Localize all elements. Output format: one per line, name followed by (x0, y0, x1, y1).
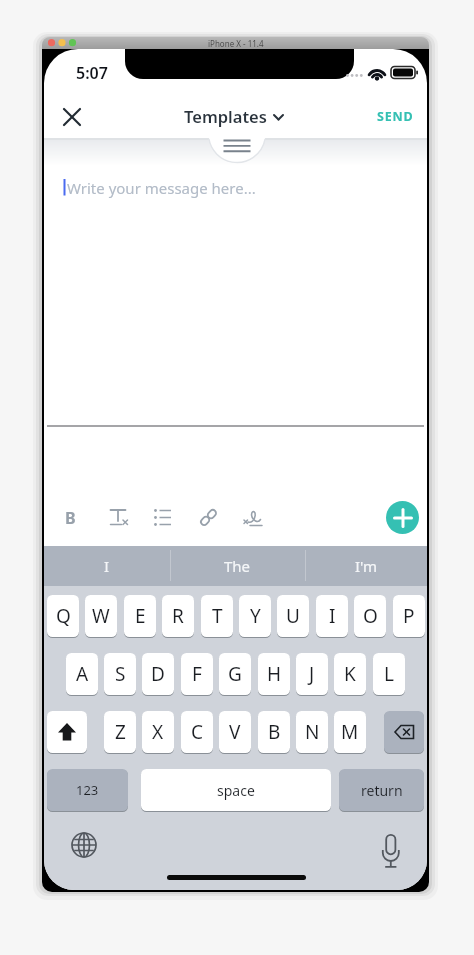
button[interactable] (47, 711, 87, 753)
button[interactable]: A (66, 653, 98, 695)
button[interactable]: SEND (371, 105, 419, 127)
button[interactable] (44, 167, 427, 424)
staticText: P (403, 603, 415, 629)
button[interactable] (241, 505, 266, 530)
staticText: J (309, 661, 315, 687)
button[interactable]: Z (104, 711, 136, 753)
staticText: B (65, 507, 76, 529)
staticText: V (229, 719, 241, 745)
button[interactable]: N (296, 711, 328, 753)
staticText: Templates (184, 105, 267, 127)
button[interactable]: F (181, 653, 213, 695)
staticText: A (76, 661, 89, 687)
staticText: Write your message here... (67, 178, 256, 198)
button[interactable]: B (58, 505, 83, 530)
button[interactable]: space (141, 769, 331, 811)
button[interactable]: I (44, 546, 169, 586)
staticText: U (286, 603, 300, 629)
button[interactable]: Q (47, 595, 79, 637)
button[interactable]: L (373, 653, 405, 695)
staticText: iPhone X - 11.4 (208, 38, 264, 49)
button[interactable] (69, 830, 99, 860)
staticText: C (191, 719, 204, 745)
button[interactable]: 123 (47, 769, 128, 811)
button[interactable]: B (258, 711, 290, 753)
staticText: 5:07 (76, 62, 108, 84)
staticText: M (341, 719, 359, 745)
button[interactable] (56, 101, 88, 133)
button[interactable] (376, 830, 406, 870)
staticText: space (217, 781, 255, 800)
staticText: K (344, 661, 356, 687)
button[interactable]: O (354, 595, 386, 637)
button[interactable]: H (258, 653, 290, 695)
staticText: R (172, 603, 184, 629)
button[interactable]: S (104, 653, 136, 695)
staticText: The (224, 556, 251, 576)
button[interactable] (106, 505, 131, 530)
button[interactable]: E (124, 595, 156, 637)
staticText: 123 (76, 781, 99, 799)
staticText: Y (250, 603, 261, 629)
staticText: G (228, 661, 242, 687)
staticText: O (363, 603, 378, 629)
button[interactable]: J (296, 653, 328, 695)
button[interactable]: The (170, 546, 304, 586)
button[interactable]: V (219, 711, 251, 753)
button[interactable] (386, 501, 419, 534)
staticText: W (92, 603, 110, 629)
staticText: F (192, 661, 202, 687)
staticText: I'm (355, 556, 378, 576)
button[interactable]: G (219, 653, 251, 695)
button[interactable]: W (85, 595, 117, 637)
button[interactable]: U (277, 595, 309, 637)
staticText: H (267, 661, 282, 687)
staticText: SEND (377, 108, 414, 125)
button[interactable]: Y (239, 595, 271, 637)
button[interactable] (384, 711, 424, 753)
staticText: E (135, 603, 146, 629)
staticText: I (104, 556, 110, 576)
button[interactable]: I'm (305, 546, 427, 586)
staticText: I (329, 603, 336, 629)
button[interactable] (196, 505, 221, 530)
button[interactable]: Templates (184, 105, 287, 127)
button[interactable]: C (181, 711, 213, 753)
staticText: T (212, 603, 223, 629)
button[interactable]: P (393, 595, 425, 637)
staticText: D (151, 661, 165, 687)
button[interactable]: X (142, 711, 174, 753)
staticText: Z (115, 719, 126, 745)
staticText: B (268, 719, 281, 745)
button[interactable]: M (334, 711, 366, 753)
staticText: Q (56, 603, 71, 629)
button[interactable] (150, 505, 175, 530)
staticText: L (384, 661, 394, 687)
button[interactable]: K (334, 653, 366, 695)
button[interactable]: I (316, 595, 348, 637)
staticText: return (361, 781, 403, 800)
button[interactable]: return (339, 769, 424, 811)
staticText: N (305, 719, 320, 745)
staticText: X (152, 719, 164, 745)
staticText: S (115, 661, 126, 687)
button[interactable]: D (142, 653, 174, 695)
button[interactable]: R (162, 595, 194, 637)
button[interactable]: T (201, 595, 233, 637)
